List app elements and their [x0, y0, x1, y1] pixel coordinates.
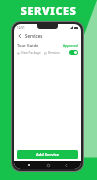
staticText: Services [25, 33, 43, 39]
button[interactable]: Back [62, 161, 70, 169]
staticText: Remove [48, 51, 60, 55]
staticText: 12:51 [17, 26, 25, 30]
staticText: Tour Guide [17, 43, 39, 48]
button[interactable]: Recents [25, 161, 33, 169]
button[interactable]: Tour Guide [14, 41, 81, 59]
button[interactable]: Add Service [17, 150, 78, 159]
staticText: Approved [63, 44, 78, 48]
staticText: SERVICES [0, 3, 97, 18]
button[interactable]: View Package [17, 51, 41, 55]
button[interactable]: Remove [44, 51, 60, 55]
button[interactable]: Home [44, 161, 52, 169]
button[interactable]: Back [16, 32, 24, 40]
button[interactable]: Toggle service on [69, 50, 78, 55]
staticText: Add Service [36, 152, 60, 157]
staticText: View Package [21, 51, 41, 55]
